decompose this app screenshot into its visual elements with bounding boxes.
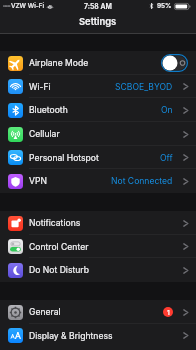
button[interactable]: Wi-Fi <box>0 75 196 98</box>
staticText: SCBOE_BYOD <box>115 82 173 92</box>
button[interactable]: Cellular <box>0 122 196 146</box>
button[interactable]: Display & Brightness <box>0 324 196 347</box>
staticText: Control Center <box>29 242 89 252</box>
staticText: Off <box>160 153 173 163</box>
staticText: On <box>161 105 173 115</box>
button[interactable]: VPN <box>0 169 196 193</box>
staticText: VZW Wi-Fi <box>11 2 45 10</box>
staticText: 7:58 AM <box>84 2 112 10</box>
staticText: Display & Brightness <box>29 331 113 341</box>
button[interactable]: Control Center <box>0 235 196 258</box>
staticText: Bluetooth <box>29 105 68 115</box>
staticText: Not Connected <box>111 176 173 186</box>
button[interactable]: General <box>0 300 196 324</box>
button[interactable]: Bluetooth <box>0 98 196 122</box>
staticText: Cellular <box>29 129 60 139</box>
staticText: 1 <box>167 308 170 316</box>
button[interactable]: Do Not Disturb <box>0 258 196 282</box>
button[interactable]: Airplane Mode <box>0 51 196 75</box>
button[interactable]: Notifications <box>0 211 196 235</box>
button[interactable]: Airplane Mode <box>161 54 188 72</box>
staticText: Notifications <box>29 218 81 228</box>
staticText: Do Not Disturb <box>29 265 89 275</box>
button[interactable]: Personal Hotspot <box>0 146 196 169</box>
staticText: General <box>29 307 61 317</box>
staticText: Wi-Fi <box>29 82 51 92</box>
staticText: 95% <box>157 2 172 10</box>
staticText: Airplane Mode <box>29 58 89 68</box>
staticText: VPN <box>29 176 47 186</box>
staticText: Settings <box>79 16 117 27</box>
staticText: Personal Hotspot <box>29 153 99 163</box>
